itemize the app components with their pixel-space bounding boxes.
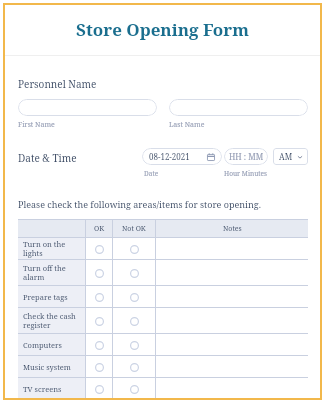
staticText: Last Name bbox=[169, 120, 205, 130]
button[interactable]: Computers bbox=[18, 334, 85, 355]
button[interactable]: Prepare tags bbox=[18, 286, 85, 307]
staticText: Computers bbox=[23, 340, 62, 350]
button[interactable]: Turn off the alarm bbox=[18, 260, 85, 285]
button[interactable]: Not OK: Check the cash register bbox=[127, 314, 141, 328]
button[interactable]: OK: Computers bbox=[92, 338, 106, 352]
staticText: Please check the following areas/items f… bbox=[18, 198, 261, 210]
button[interactable]: Hour Minutes input bbox=[224, 148, 268, 165]
button[interactable]: Not OK: Turn off the alarm bbox=[127, 266, 141, 280]
button[interactable]: OK: Music system bbox=[92, 360, 106, 374]
button[interactable]: Music system bbox=[18, 356, 85, 377]
staticText: OK bbox=[94, 224, 105, 234]
staticText: 08-12-2021 bbox=[149, 151, 190, 162]
button[interactable]: OK: TV screens bbox=[92, 382, 106, 396]
button[interactable]: OK: Turn on the lights bbox=[92, 242, 106, 256]
staticText: Store Opening Form bbox=[76, 18, 249, 41]
button[interactable]: First Name input bbox=[18, 99, 157, 116]
button[interactable]: OK: Check the cash register bbox=[92, 314, 106, 328]
staticText: Personnel Name bbox=[18, 77, 97, 91]
button[interactable]: Date input bbox=[142, 148, 222, 165]
staticText: Hour Minutes bbox=[224, 169, 267, 178]
staticText: Not OK bbox=[122, 224, 146, 234]
button[interactable]: Not OK: Turn on the lights bbox=[127, 242, 141, 256]
staticText: First Name bbox=[18, 120, 55, 130]
staticText: Turn off the alarm bbox=[23, 263, 66, 283]
staticText: HH : MM bbox=[229, 151, 264, 162]
button[interactable]: Not OK: TV screens bbox=[127, 382, 141, 396]
button[interactable]: TV screens bbox=[18, 378, 85, 399]
button[interactable]: Not OK: Prepare tags bbox=[127, 290, 141, 304]
button[interactable]: Notes for TV screens bbox=[156, 378, 308, 399]
button[interactable]: Not OK: Computers bbox=[127, 338, 141, 352]
button[interactable]: Check the cash register bbox=[18, 308, 85, 333]
staticText: Date & Time bbox=[18, 151, 77, 165]
staticText: Date bbox=[144, 169, 159, 178]
staticText: TV screens bbox=[23, 384, 62, 394]
button[interactable]: OK: Prepare tags bbox=[92, 290, 106, 304]
button[interactable]: Turn on the lights bbox=[18, 238, 85, 259]
staticText: AM bbox=[279, 151, 293, 162]
button[interactable]: AM PM selector bbox=[273, 148, 308, 165]
staticText: Music system bbox=[23, 362, 71, 372]
staticText: Notes bbox=[223, 224, 242, 234]
button[interactable]: OK: Turn off the alarm bbox=[92, 266, 106, 280]
staticText: Check the cash register bbox=[23, 311, 76, 331]
staticText: Prepare tags bbox=[23, 292, 68, 302]
button[interactable]: Last Name input bbox=[169, 99, 308, 116]
button[interactable]: Not OK: Music system bbox=[127, 360, 141, 374]
staticText: Turn on the lights bbox=[23, 239, 80, 259]
